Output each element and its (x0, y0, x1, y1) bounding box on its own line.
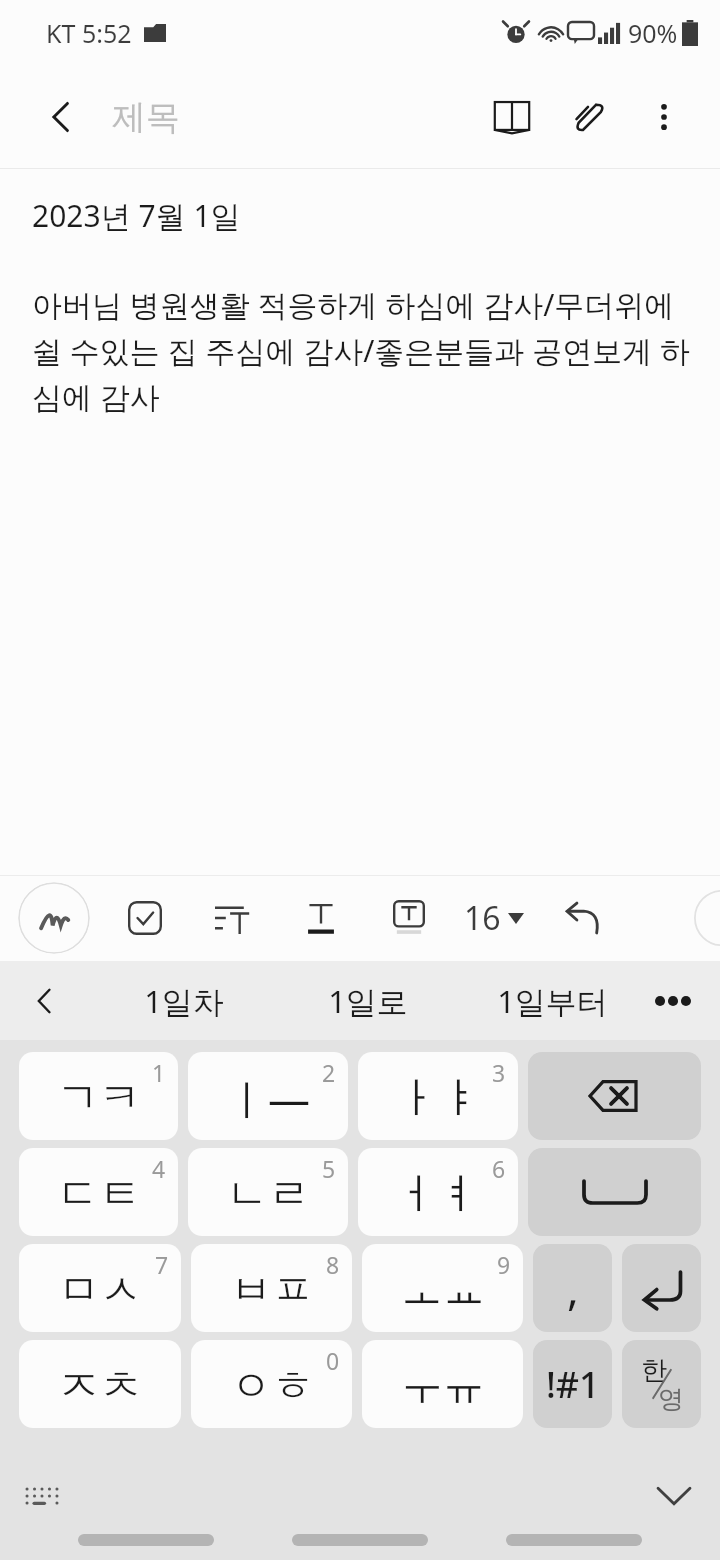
button[interactable]: More options (626, 79, 702, 155)
button[interactable]: Keyboard settings (10, 1464, 74, 1528)
button[interactable]: Undo (550, 885, 616, 951)
button[interactable]: Text style (288, 885, 354, 951)
staticText: ㅁㅅ (58, 1264, 142, 1317)
staticText: ㅇㅎ (230, 1360, 314, 1413)
button[interactable]: Navigation (506, 1534, 642, 1546)
staticText: 6 (492, 1153, 506, 1184)
button[interactable]: Text box (376, 885, 442, 951)
button[interactable]: Paragraph style (200, 885, 266, 951)
button[interactable]: 1일부터 (460, 961, 644, 1040)
button[interactable]: ㅁㅅ (19, 1244, 181, 1332)
staticText: ㅓㅕ (396, 1168, 480, 1221)
staticText: ㄱㅋ (57, 1072, 141, 1125)
staticText: KT 5:52 (46, 16, 132, 50)
button[interactable]: Comma (533, 1244, 612, 1332)
button[interactable]: Language (622, 1340, 701, 1428)
button[interactable]: Symbols (533, 1340, 612, 1428)
button[interactable]: ㅇㅎ (191, 1340, 352, 1428)
staticText: 1일부터 (497, 980, 608, 1022)
staticText: ㅣ— (226, 1070, 311, 1127)
button[interactable]: ㅜㅠ (362, 1340, 523, 1428)
staticText: 한 (641, 1354, 667, 1387)
staticText: 1일로 (328, 980, 408, 1022)
staticText: ㄷㅌ (57, 1168, 141, 1221)
button[interactable]: 1일차 (92, 961, 276, 1040)
staticText: ㅏㅑ (396, 1072, 480, 1125)
button[interactable]: Checklist (112, 885, 178, 951)
staticText: 16 (464, 896, 501, 940)
staticText: 9 (497, 1249, 511, 1280)
button[interactable]: Handwriting (18, 882, 90, 954)
staticText: ㅗㅛ (401, 1264, 485, 1317)
staticText: ㅜㅠ (401, 1360, 485, 1413)
staticText: 90% (628, 16, 678, 50)
staticText: 아버님 병원생활 적응하게 하심에 감사/무더위에 쉴 수있는 집 주심에 감사… (32, 284, 690, 416)
button[interactable]: Reading mode (474, 79, 550, 155)
staticText: 5 (322, 1153, 336, 1184)
button[interactable]: ㅗㅛ (362, 1244, 523, 1332)
button[interactable]: ㅈㅊ (19, 1340, 181, 1428)
button[interactable]: ㅂㅍ (191, 1244, 352, 1332)
staticText: ㄴㄹ (226, 1168, 310, 1221)
button[interactable]: Navigation (292, 1534, 428, 1546)
button[interactable]: Attach (550, 79, 626, 155)
button[interactable]: Enter (622, 1244, 701, 1332)
button[interactable]: ㄴㄹ (188, 1148, 348, 1236)
button[interactable]: Space (528, 1148, 701, 1236)
button[interactable]: Backspace (528, 1052, 701, 1140)
staticText: 3 (492, 1057, 506, 1088)
staticText: 제목 (112, 96, 180, 139)
staticText: , (567, 1258, 579, 1318)
staticText: 1일차 (144, 980, 224, 1022)
staticText: 7 (155, 1249, 169, 1280)
staticText: 영 (658, 1383, 684, 1416)
staticText: 2023년 7월 1일 (32, 195, 241, 236)
staticText: 1 (152, 1057, 166, 1088)
button[interactable]: More suggestions (642, 970, 704, 1032)
button[interactable]: ㄱㅋ (19, 1052, 178, 1140)
button[interactable]: Back (24, 79, 100, 155)
button[interactable]: Navigation (78, 1534, 214, 1546)
button[interactable]: ㅓㅕ (358, 1148, 518, 1236)
button[interactable]: Previous suggestions (12, 968, 78, 1034)
staticText: !#1 (546, 1360, 600, 1409)
button[interactable]: Hide keyboard (642, 1464, 706, 1528)
button[interactable]: 16 (458, 882, 530, 954)
staticText: 0 (326, 1345, 340, 1376)
button[interactable]: ㄷㅌ (19, 1148, 178, 1236)
staticText: ㅂㅍ (230, 1264, 314, 1317)
button[interactable]: ㅏㅑ (358, 1052, 518, 1140)
staticText: 8 (326, 1249, 340, 1280)
button[interactable]: ㅣ— (188, 1052, 348, 1140)
button[interactable]: 1일로 (276, 961, 460, 1040)
staticText: 4 (152, 1153, 166, 1184)
staticText: 2 (322, 1057, 336, 1088)
staticText: ㅈㅊ (58, 1360, 142, 1413)
